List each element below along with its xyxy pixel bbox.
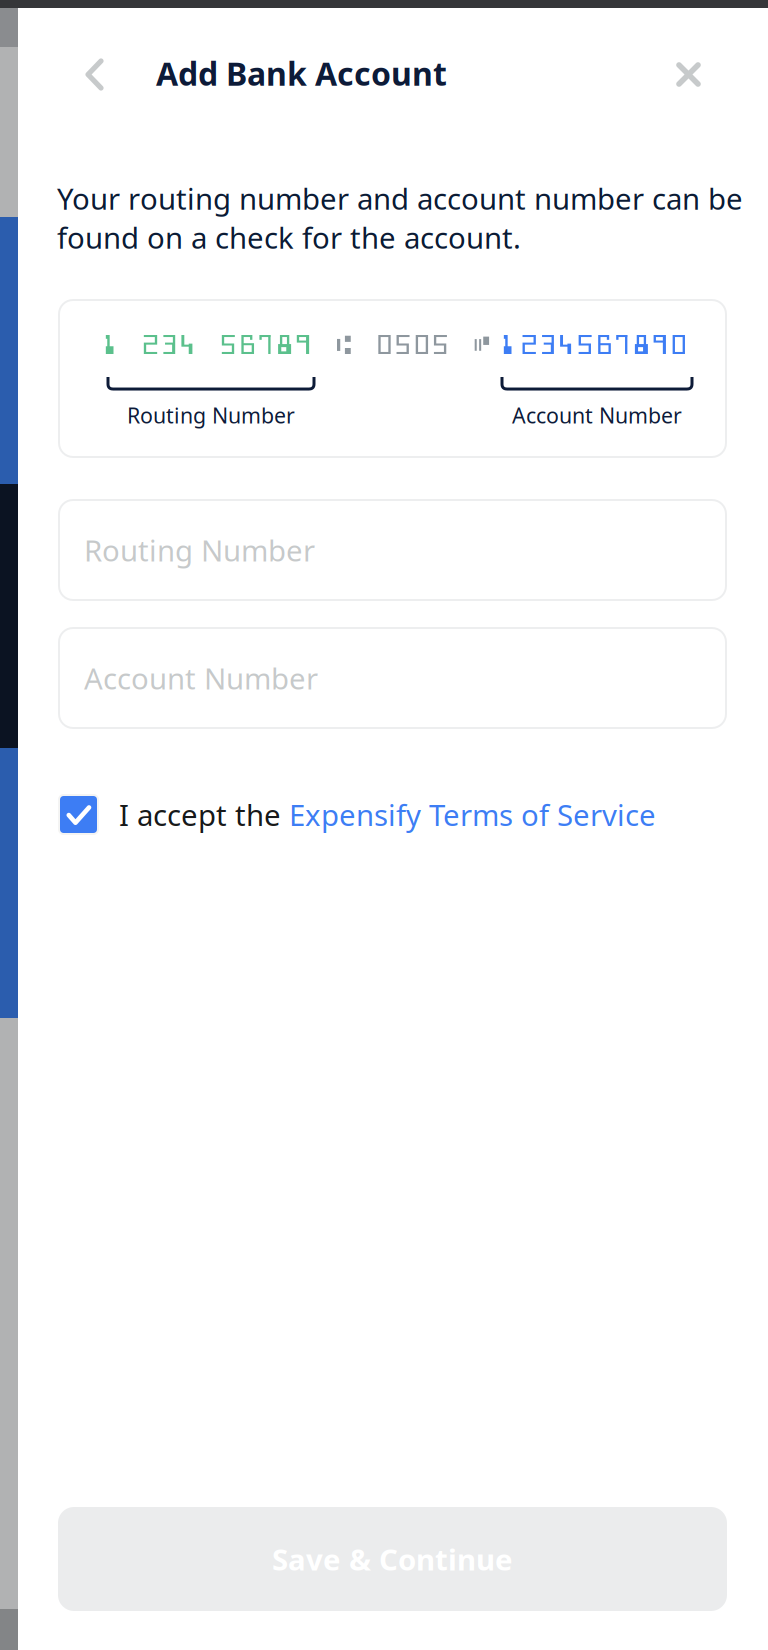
staticText: Your routing number and account number c… (57, 179, 743, 257)
staticText: Routing Number (127, 401, 295, 429)
button[interactable]: Back (72, 45, 117, 104)
staticText: Expensify Terms of Service (289, 795, 656, 834)
staticText: Routing Number (84, 530, 315, 569)
button[interactable]: Account Number (58, 627, 727, 729)
staticText: Account Number (84, 658, 318, 697)
staticText: Add Bank Account (156, 52, 447, 94)
button[interactable]: Close (664, 50, 713, 99)
button[interactable]: Accept terms of service (58, 794, 99, 835)
button[interactable]: Routing Number (58, 499, 727, 601)
button[interactable]: Expensify Terms of Service (289, 795, 656, 834)
staticText: I accept the (119, 795, 289, 834)
button[interactable]: Save & Continue (58, 1507, 727, 1611)
staticText: Account Number (512, 401, 682, 429)
staticText: Save & Continue (272, 1539, 513, 1578)
